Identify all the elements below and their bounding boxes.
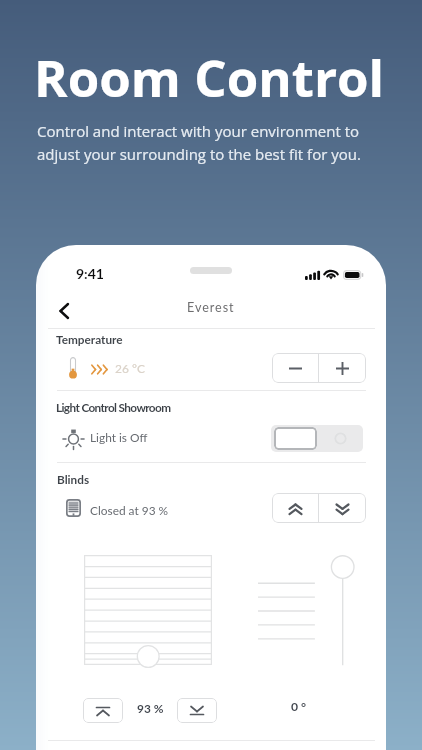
button[interactable]: Open blinds: [272, 493, 318, 523]
staticText: Control and interact with your environme…: [37, 121, 361, 164]
button[interactable]: Increase temperature: [319, 353, 366, 383]
button[interactable]: Light toggle: [271, 425, 363, 452]
staticText: Temperature: [56, 332, 123, 346]
button[interactable]: Close blinds: [319, 493, 366, 523]
staticText: 0 °: [291, 699, 307, 714]
staticText: 93 %: [137, 701, 164, 715]
staticText: Everest: [187, 300, 235, 315]
staticText: Closed at 93 %: [90, 503, 169, 517]
button[interactable]: Raise blinds fully: [83, 698, 123, 723]
staticText: Light Control Showroom: [56, 400, 171, 414]
staticText: Light is Off: [90, 430, 148, 444]
button[interactable]: Decrease temperature: [272, 353, 318, 383]
staticText: 26 °C: [115, 361, 145, 375]
button[interactable]: Back: [47, 294, 81, 328]
staticText: Room Control: [34, 42, 385, 111]
staticText: Blinds: [57, 472, 90, 486]
button[interactable]: Lower blinds fully: [177, 698, 217, 723]
staticText: 9:41: [76, 265, 104, 282]
